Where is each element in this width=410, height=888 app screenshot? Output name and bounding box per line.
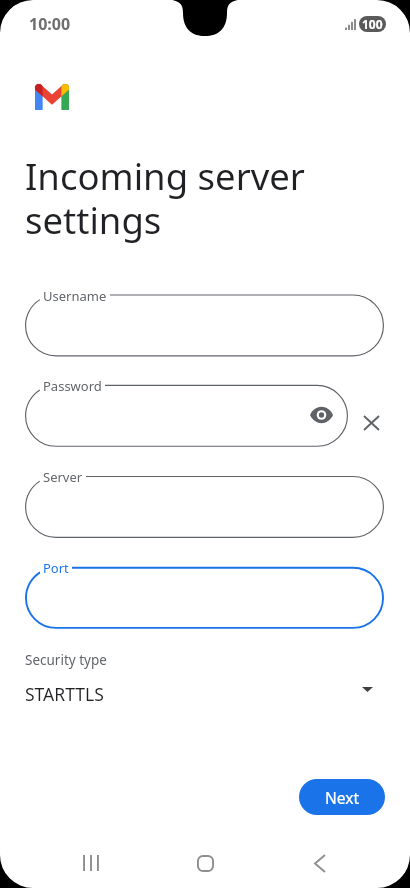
button[interactable]: Home: [187, 828, 223, 888]
button[interactable]: Show password: [306, 400, 336, 430]
button[interactable]: Recent apps: [73, 828, 109, 888]
staticText: STARTTLS: [25, 682, 104, 706]
staticText: Incoming server settings: [25, 151, 305, 244]
staticText: Password: [43, 377, 102, 395]
staticText: Username: [43, 287, 107, 305]
button[interactable]: Port: [25, 566, 384, 628]
staticText: Next: [325, 787, 360, 808]
staticText: 10:00: [29, 13, 71, 35]
button[interactable]: Security type: [0, 643, 410, 710]
staticText: Server: [43, 468, 83, 486]
staticText: Port: [43, 559, 69, 577]
button[interactable]: Clear password: [353, 405, 389, 441]
staticText: 100: [362, 16, 383, 32]
button[interactable]: Server: [25, 475, 384, 537]
button[interactable]: Next: [299, 779, 385, 815]
button[interactable]: Username: [25, 294, 384, 356]
button[interactable]: Back: [302, 828, 338, 888]
button[interactable]: Password: [25, 384, 348, 446]
staticText: Security type: [25, 651, 107, 669]
